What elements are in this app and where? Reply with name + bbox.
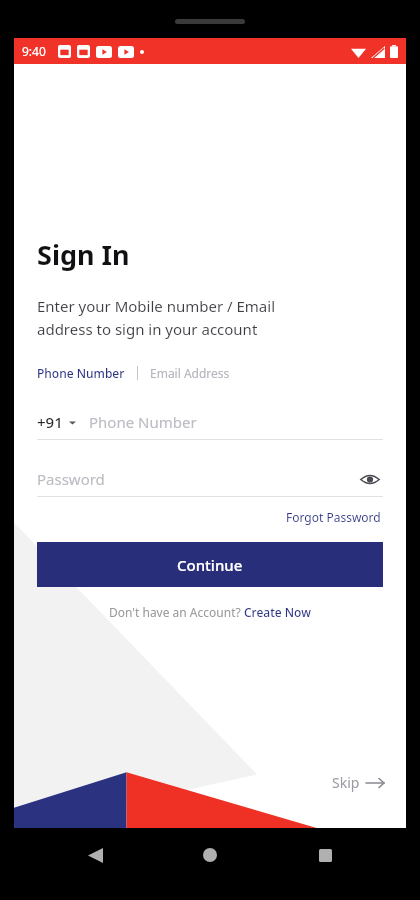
staticText: Email Address [150, 365, 230, 381]
button[interactable]: Back [75, 835, 115, 875]
staticText: Sign In [37, 236, 130, 273]
button[interactable]: Forgot Password [284, 506, 383, 528]
button[interactable]: Show password [357, 466, 383, 492]
staticText: Password [37, 469, 357, 489]
button[interactable]: +91 [37, 405, 383, 440]
button[interactable]: Home [190, 835, 230, 875]
staticText: Phone Number [37, 365, 125, 381]
button[interactable]: Skip [328, 769, 388, 796]
button[interactable]: Recent apps [305, 835, 345, 875]
staticText: Enter your Mobile number / Email address… [37, 296, 276, 339]
staticText: Forgot Password [286, 509, 381, 525]
staticText: Don't have an Account? [109, 604, 244, 620]
staticText: Skip [332, 773, 360, 792]
button[interactable]: Phone Number [37, 361, 125, 385]
staticText: 9:40 [22, 43, 46, 59]
button[interactable]: Password [37, 462, 383, 497]
staticText: Phone Number [89, 412, 197, 432]
button[interactable]: Create Now [244, 604, 311, 620]
button[interactable]: Email Address [150, 361, 230, 385]
staticText: +91 [37, 412, 63, 432]
staticText: Continue [177, 555, 243, 575]
staticText: Create Now [244, 604, 311, 620]
button[interactable]: Continue [37, 542, 383, 587]
